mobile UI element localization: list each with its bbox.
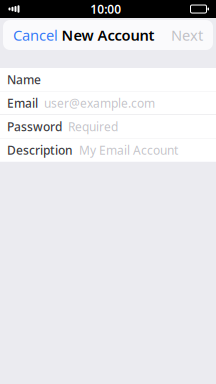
- staticText: user@example.com: [44, 95, 155, 111]
- staticText: Email: [7, 95, 38, 111]
- staticText: Required: [68, 118, 118, 134]
- staticText: Next: [171, 25, 203, 45]
- staticText: My Email Account: [79, 142, 178, 158]
- button[interactable]: Cancel: [5, 18, 66, 52]
- button[interactable]: Password: [0, 115, 216, 138]
- button[interactable]: Email: [0, 91, 216, 114]
- button[interactable]: Next: [163, 18, 211, 52]
- staticText: Password: [7, 118, 62, 134]
- staticText: New Account: [61, 25, 154, 45]
- button[interactable]: Description: [0, 138, 216, 161]
- staticText: 10:00: [90, 1, 121, 17]
- staticText: Cancel: [13, 25, 58, 45]
- staticText: Name: [7, 71, 41, 87]
- button[interactable]: Name: [0, 68, 216, 91]
- staticText: Description: [7, 142, 73, 158]
